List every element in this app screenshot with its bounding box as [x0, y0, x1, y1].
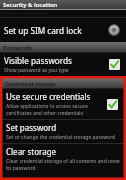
staticText: Set password: [6, 122, 57, 133]
staticText: Show password as you type: [4, 67, 69, 74]
staticText: Credential storage: [5, 80, 56, 87]
button[interactable]: Set password: [2, 120, 124, 143]
staticText: Clear credential storage of all contents…: [6, 158, 120, 172]
button[interactable]: Visible passwords: [0, 53, 126, 76]
other: Set up SIM card lock: [106, 24, 122, 36]
button[interactable]: Use secure credentials: [2, 89, 124, 119]
staticText: Set up screen lock: [4, 10, 48, 14]
staticText: Visible passwords: [4, 55, 72, 66]
staticText: Set up SIM card lock: [4, 25, 82, 36]
staticText: Security & location: [3, 1, 58, 9]
button[interactable]: Clear storage: [2, 144, 124, 174]
staticText: Set or change the credential storage pas…: [6, 134, 116, 141]
staticText: Allow applications to access secure cert…: [6, 103, 104, 117]
button[interactable]: Set up SIM card lock: [0, 18, 126, 42]
button[interactable]: Set up screen lock: [0, 10, 126, 17]
staticText: Clear storage: [6, 146, 57, 157]
staticText: Passwords: [3, 44, 32, 51]
staticText: Use secure credentials: [6, 91, 91, 102]
